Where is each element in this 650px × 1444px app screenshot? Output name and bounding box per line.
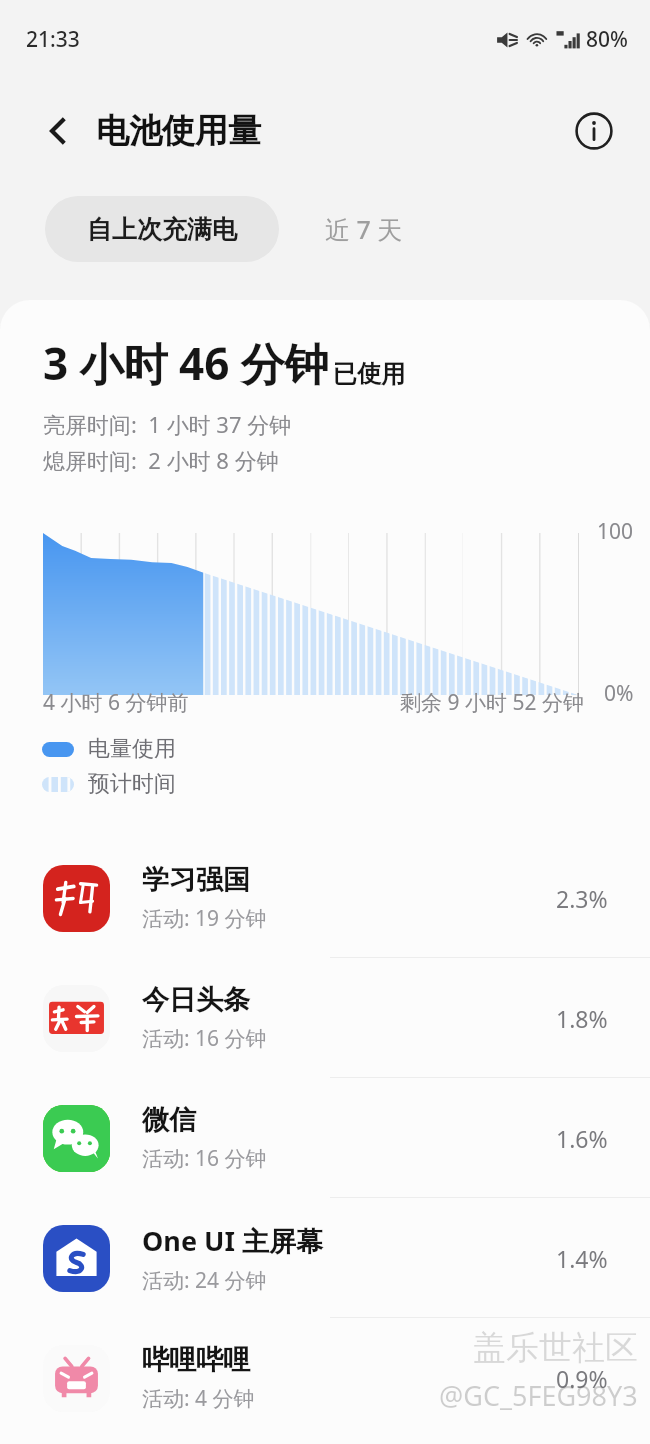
staticText: 3 小时 46 分钟 [43,333,329,393]
staticText: 活动: 16 分钟 [142,1144,267,1173]
staticText: 哔哩哔哩 [142,1343,250,1377]
staticText: 0.9% [556,1363,608,1394]
staticText: 熄屏时间: 2 小时 8 分钟 [43,445,279,475]
staticText: 剩余 9 小时 52 分钟 [400,688,584,717]
staticText: 活动: 4 分钟 [142,1384,255,1413]
staticText: 2.3% [556,883,608,914]
staticText: 微信 [142,1103,196,1137]
button[interactable]: 学习强国 [0,838,650,958]
button[interactable]: Information [566,103,622,159]
staticText: 活动: 19 分钟 [142,904,267,933]
button[interactable]: One UI 主屏幕 [0,1198,650,1318]
staticText: 21:33 [26,25,80,54]
staticText: @GC_5FEG98Y3 [439,1377,638,1414]
staticText: 亮屏时间: 1 小时 37 分钟 [43,409,292,439]
staticText: 80% [586,25,628,54]
staticText: 4 小时 6 分钟前 [43,688,189,717]
staticText: 预计时间 [88,770,176,798]
staticText: 活动: 16 分钟 [142,1024,267,1053]
staticText: 自上次充满电 [87,214,237,245]
staticText: 0% [604,679,634,708]
button[interactable]: Back [30,103,86,159]
staticText: 电量使用 [88,735,176,763]
staticText: 已使用 [333,359,405,389]
staticText: 1.8% [556,1003,608,1034]
button[interactable]: 今日头条 [0,958,650,1078]
staticText: 学习强国 [142,863,250,897]
staticText: 电池使用量 [96,110,261,152]
button[interactable]: 自上次充满电 [45,196,279,262]
button[interactable]: 哔哩哔哩 [0,1318,650,1438]
staticText: 盖乐世社区 [473,1327,638,1369]
staticText: 1.6% [556,1123,608,1154]
staticText: 今日头条 [142,983,250,1017]
staticText: One UI 主屏幕 [142,1222,323,1259]
staticText: 近 7 天 [325,212,403,246]
staticText: 1.4% [556,1243,608,1274]
staticText: 100 [597,517,634,546]
button[interactable]: 微信 [0,1078,650,1198]
button[interactable]: 近 7 天 [279,196,449,262]
staticText: 活动: 24 分钟 [142,1266,267,1295]
